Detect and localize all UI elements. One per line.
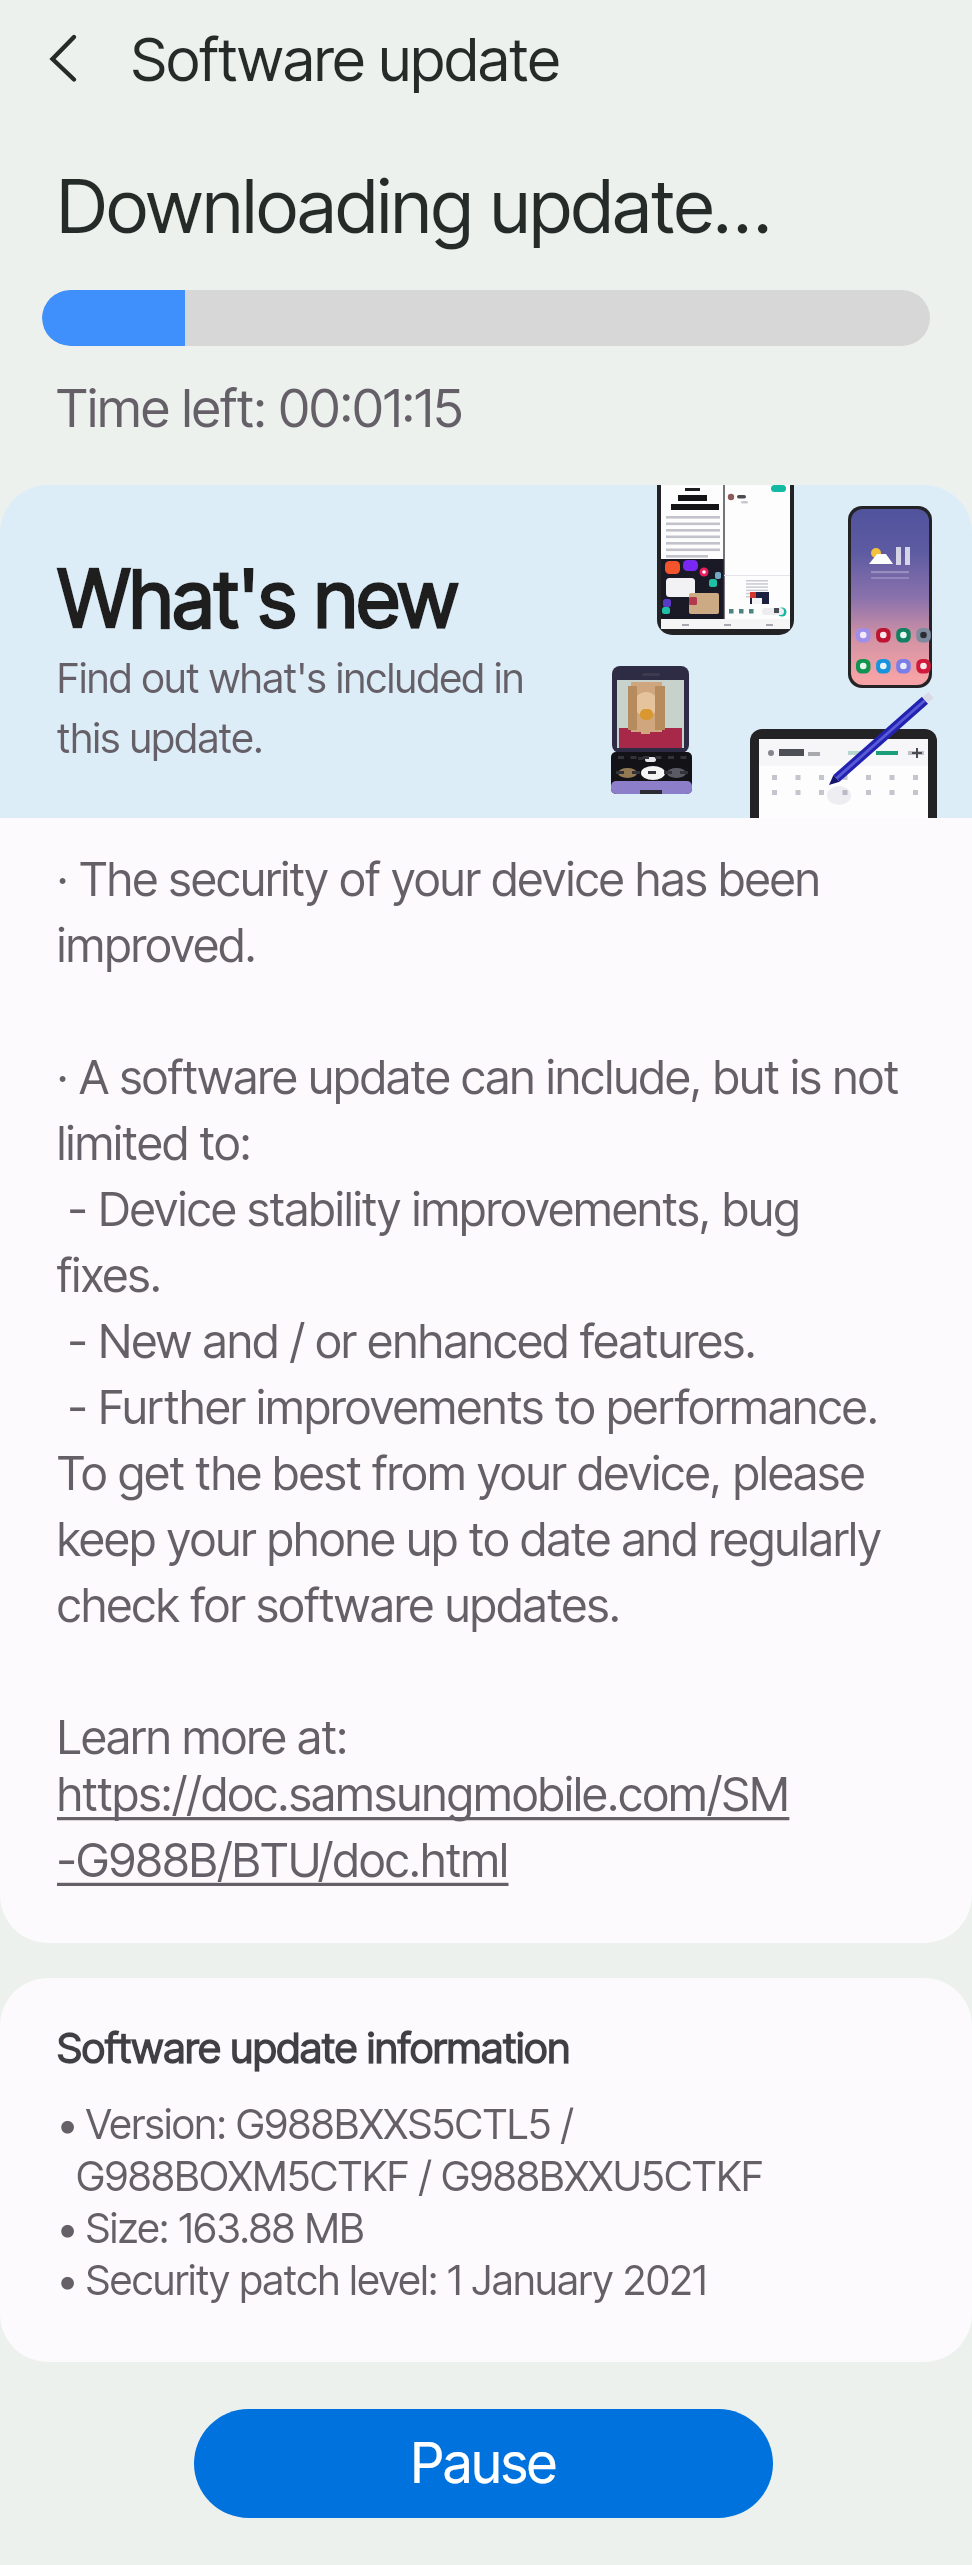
staticText: Software update information [57, 2022, 571, 2073]
staticText: Pause [411, 2430, 557, 2497]
button[interactable]: What's new [0, 485, 972, 818]
button[interactable]: Pause [194, 2409, 773, 2518]
staticText: · The security of your device has been i… [57, 850, 899, 1765]
button[interactable]: Back [10, 15, 96, 101]
button[interactable]: https://doc.samsungmobile.com/SM -G988B/… [57, 1765, 790, 1888]
staticText: • Version: G988BXXS5CTL5 / G988BOXM5CTKF… [57, 2099, 764, 2305]
staticText: Software update [131, 23, 560, 96]
staticText: What's new [58, 550, 459, 646]
staticText: Downloading update… [57, 161, 771, 251]
staticText: Time left: 00:01:15 [56, 376, 463, 440]
staticText: Find out what's included in this update. [57, 653, 525, 763]
